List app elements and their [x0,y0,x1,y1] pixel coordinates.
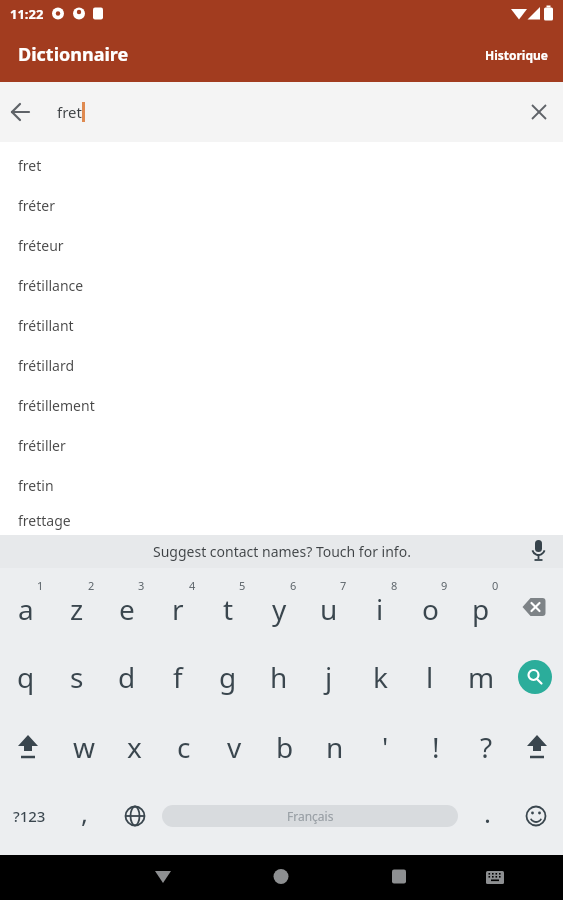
button[interactable]: q [1,647,51,707]
staticText: ?123 [13,806,46,826]
button[interactable]: fret [0,145,563,185]
staticText: ? [480,728,493,766]
button[interactable]: ! [411,717,461,777]
button[interactable]: ?123 [4,786,54,846]
button[interactable]: ' [360,717,410,777]
button[interactable]: g [203,647,253,707]
button[interactable]: 4 [167,555,217,615]
button[interactable]: frétillant [0,305,563,345]
button[interactable] [514,794,558,838]
staticText: frétillance [18,276,84,295]
button[interactable] [6,725,50,769]
button[interactable]: 6 [268,555,318,615]
button[interactable]: n [310,717,360,777]
button[interactable]: i [355,579,405,639]
staticText: n [326,728,344,766]
staticText: p [472,590,490,628]
staticText: 8 [391,578,398,593]
button[interactable]: b [260,717,310,777]
staticText: s [70,658,84,696]
button[interactable] [113,794,157,838]
staticText: 2 [88,578,95,593]
button[interactable] [471,855,519,900]
staticText: fréter [18,196,55,215]
staticText: u [320,590,338,628]
button[interactable]: frétillement [0,385,563,425]
button[interactable]: fréter [0,185,563,225]
button[interactable]: y [254,579,304,639]
button[interactable]: 3 [116,555,166,615]
button[interactable]: 2 [66,555,116,615]
staticText: 7 [340,578,347,593]
button[interactable]: ? [461,717,511,777]
staticText: k [373,658,388,696]
button[interactable]: frétillance [0,265,563,305]
button[interactable]: x [109,717,159,777]
button[interactable]: . [462,782,512,842]
button[interactable]: e [102,579,152,639]
button[interactable]: frettage [0,505,563,535]
button[interactable]: m [456,647,506,707]
button[interactable] [139,855,187,900]
button[interactable]: u [304,579,354,639]
button[interactable]: 8 [369,555,419,615]
button[interactable]: l [405,647,455,707]
button[interactable]: p [456,579,506,639]
staticText: 6 [290,578,297,593]
button[interactable]: d [102,647,152,707]
button[interactable]: frétiller [0,425,563,465]
button[interactable]: s [52,647,102,707]
button[interactable] [257,855,305,900]
staticText: i [376,590,384,628]
button[interactable] [515,725,559,769]
button[interactable]: , [59,782,109,842]
staticText: f [173,658,183,696]
button[interactable]: 0 [470,555,520,615]
button[interactable] [517,659,553,695]
button[interactable]: o [405,579,455,639]
staticText: 1 [37,578,44,593]
staticText: Suggest contact names? Touch for info. [153,542,411,561]
button[interactable] [375,855,423,900]
staticText: 0 [492,578,499,593]
button[interactable]: Historique [479,41,555,69]
button[interactable] [512,587,556,631]
button[interactable] [515,82,563,142]
button[interactable]: 9 [419,555,469,615]
button[interactable]: fretin [0,465,563,505]
staticText: j [325,658,333,696]
staticText: m [468,658,495,696]
button[interactable]: t [203,579,253,639]
staticText: fretin [18,476,54,495]
button[interactable]: fréteur [0,225,563,265]
button[interactable]: frétillard [0,345,563,385]
staticText: a [18,590,34,628]
button[interactable]: h [254,647,304,707]
staticText: g [219,658,237,696]
staticText: frettage [18,511,71,530]
staticText: 5 [239,578,246,593]
button[interactable]: 1 [15,555,65,615]
staticText: frétillard [18,356,75,375]
button[interactable]: w [59,717,109,777]
button[interactable]: f [153,647,203,707]
button[interactable]: Français [162,805,458,827]
staticText: o [422,590,439,628]
button[interactable]: j [304,647,354,707]
button[interactable]: z [52,579,102,639]
button[interactable]: a [1,579,51,639]
staticText: fret [18,156,42,175]
button[interactable]: k [355,647,405,707]
staticText: b [276,728,294,766]
button[interactable]: 5 [217,555,267,615]
staticText: frétiller [18,436,66,455]
button[interactable]: 7 [318,555,368,615]
button[interactable]: v [209,717,259,777]
button[interactable]: c [159,717,209,777]
button[interactable]: Suggest contact names? Touch for info. [0,535,563,568]
staticText: frétillant [18,316,74,335]
button[interactable]: r [153,579,203,639]
staticText: ' [382,728,389,766]
button[interactable] [0,82,46,142]
staticText: , [81,795,88,830]
